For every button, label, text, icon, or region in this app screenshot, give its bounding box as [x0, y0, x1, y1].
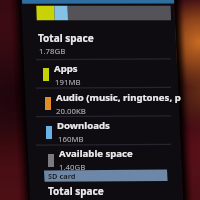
staticText: Apps	[54, 62, 78, 75]
staticText: 160MB	[58, 134, 84, 145]
button[interactable]	[44, 183, 172, 200]
button[interactable]	[34, 30, 164, 57]
button[interactable]	[37, 60, 163, 88]
button[interactable]	[39, 89, 165, 117]
staticText: 1.78GB	[39, 46, 66, 57]
staticText: Total space	[48, 184, 104, 198]
staticText: Audio (music, ringtones, p	[56, 91, 181, 104]
staticText: Downloads	[57, 119, 110, 132]
button[interactable]	[42, 145, 168, 173]
staticText: 191MB	[55, 77, 81, 88]
staticText: 1.40GB	[59, 162, 86, 173]
staticText: 20.00KB	[56, 106, 86, 117]
staticText: SD card	[48, 171, 76, 181]
staticText: Total space	[38, 31, 94, 45]
button[interactable]	[44, 170, 168, 182]
staticText: Available space	[59, 147, 133, 160]
button[interactable]	[40, 117, 166, 145]
